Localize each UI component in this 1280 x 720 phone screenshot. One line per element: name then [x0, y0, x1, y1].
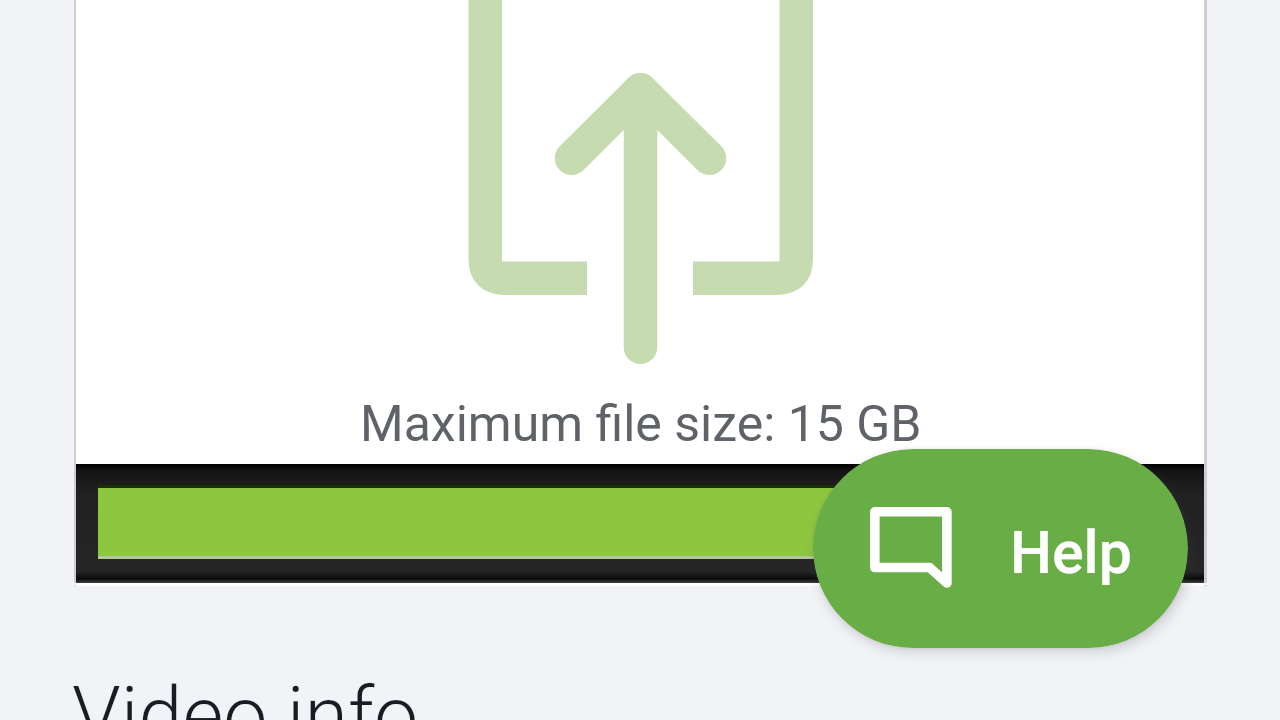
staticText: Maximum file size: 15 GB	[360, 395, 922, 454]
button[interactable]: Help	[813, 449, 1188, 648]
other: Upload video	[440, 0, 840, 380]
staticText: Help	[1010, 518, 1132, 587]
staticText: Video info	[72, 670, 419, 720]
button[interactable]	[74, 0, 1207, 586]
